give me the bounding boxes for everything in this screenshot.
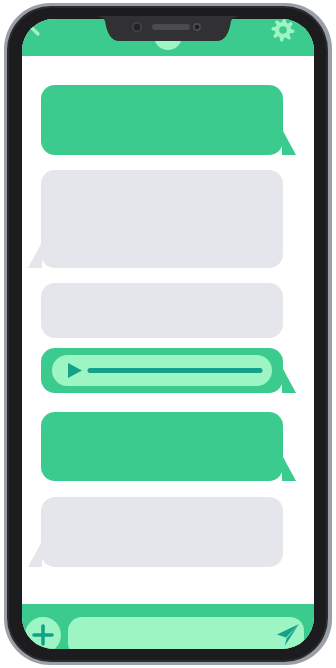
button[interactable]: Add attachment	[26, 618, 60, 652]
button[interactable]	[68, 616, 276, 656]
button[interactable]: Back	[23, 13, 51, 41]
button[interactable]	[26, 497, 283, 568]
button[interactable]	[26, 170, 283, 268]
button[interactable]: Play voice message	[41, 348, 296, 394]
button[interactable]	[41, 412, 296, 481]
button[interactable]	[41, 85, 296, 155]
button[interactable]: Settings	[268, 13, 300, 45]
button[interactable]: Send	[278, 618, 310, 650]
